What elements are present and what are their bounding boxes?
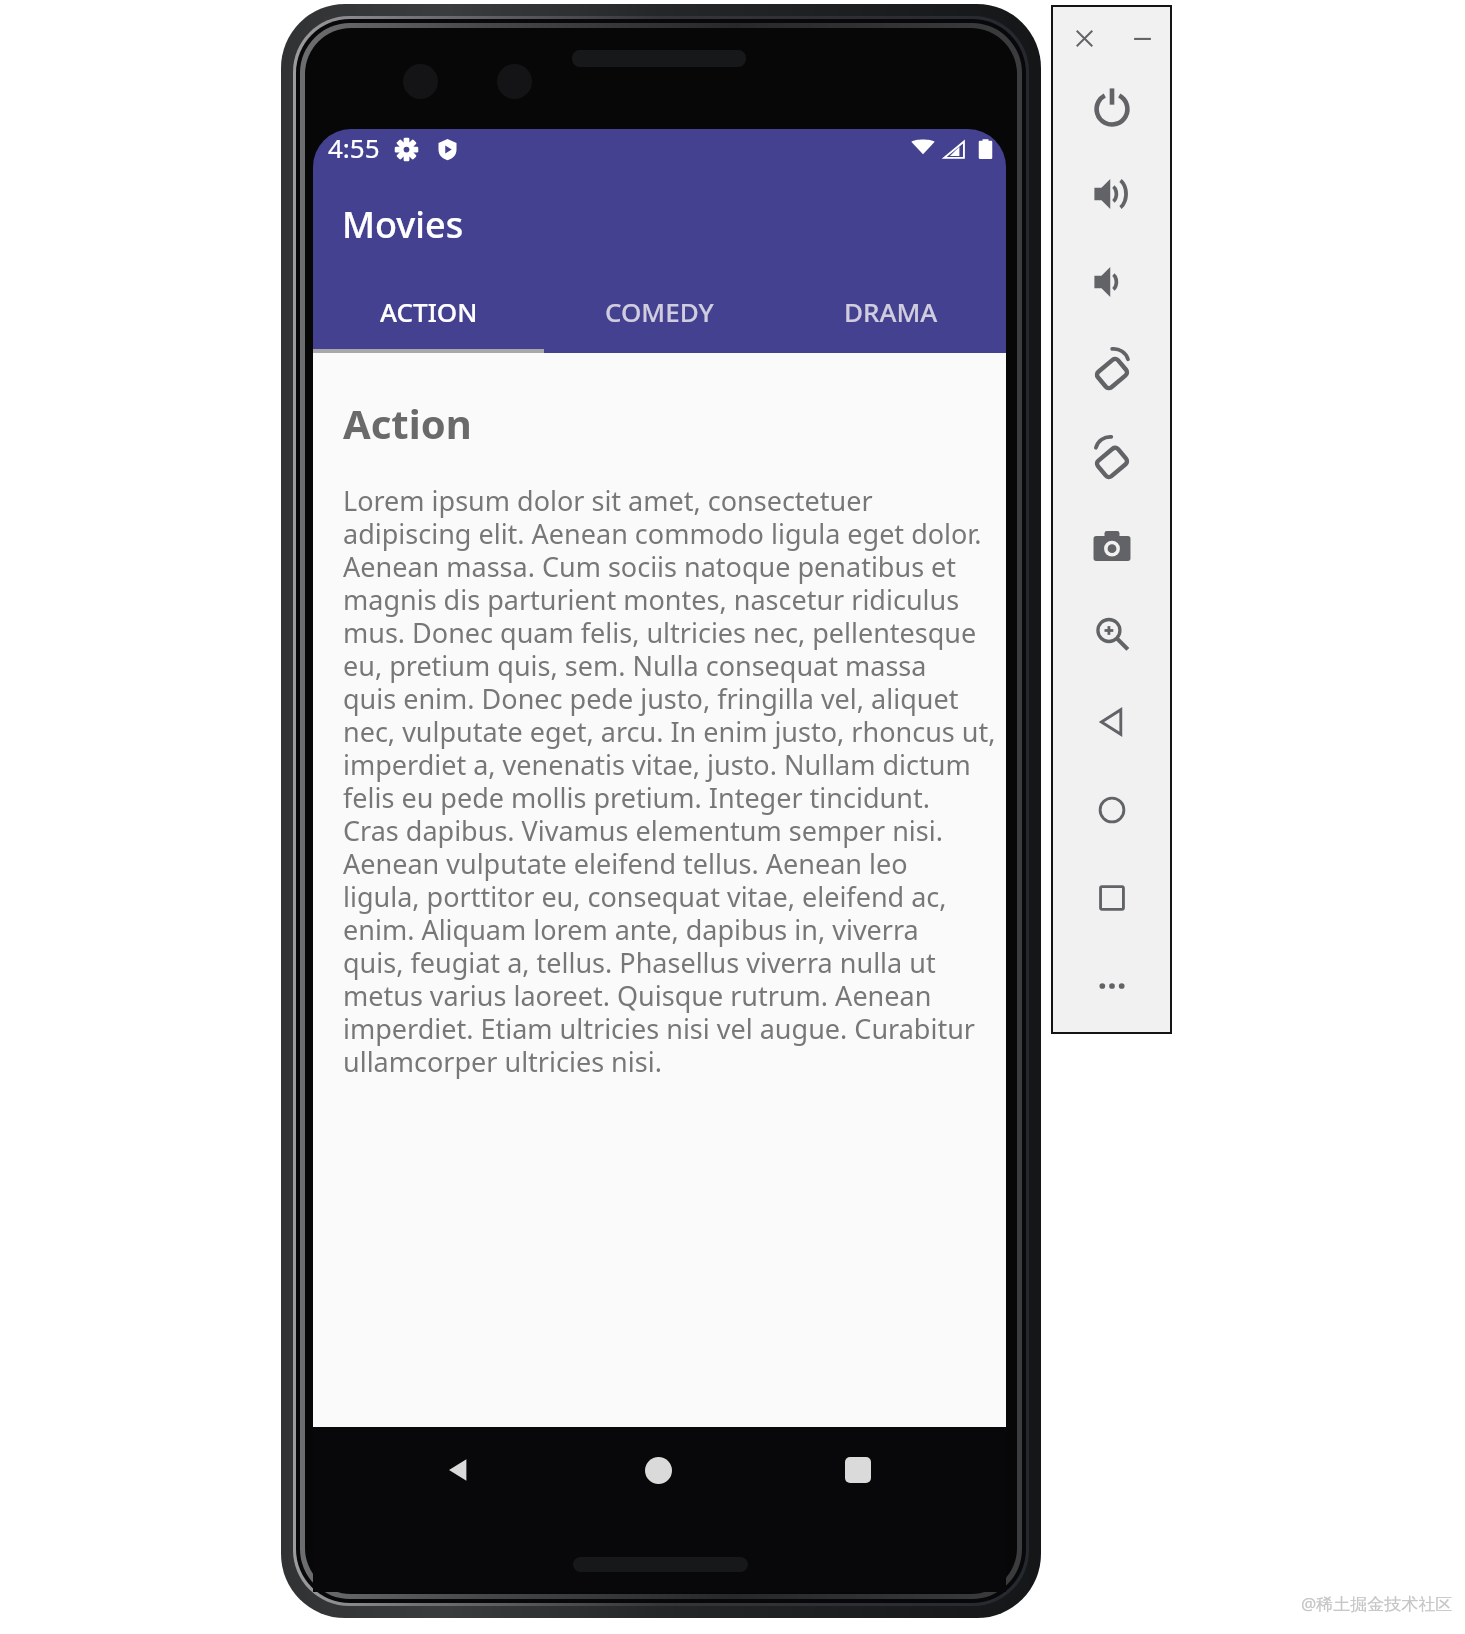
button[interactable]: Zoom in <box>1053 590 1170 678</box>
staticText: ACTION <box>380 294 478 329</box>
button[interactable]: Minimize <box>1115 7 1170 62</box>
staticText: @稀土掘金技术社区 <box>1301 1592 1453 1615</box>
button[interactable]: More <box>1053 942 1170 1030</box>
button[interactable]: Home <box>1053 766 1170 854</box>
button[interactable]: Overview <box>1053 854 1170 942</box>
button[interactable]: Back <box>428 1440 488 1500</box>
button[interactable]: Close <box>1053 7 1115 62</box>
button[interactable]: Home <box>628 1440 688 1500</box>
staticText: Action <box>343 396 472 450</box>
button[interactable]: Volume down <box>1053 238 1170 326</box>
button[interactable]: Back <box>1053 678 1170 766</box>
staticText: Lorem ipsum dolor sit amet, consectetuer… <box>343 482 996 1080</box>
button[interactable]: ACTION <box>313 275 544 353</box>
staticText: 4:55 <box>328 130 380 165</box>
staticText: COMEDY <box>605 294 714 329</box>
button[interactable]: COMEDY <box>544 275 775 353</box>
button[interactable]: Volume up <box>1053 150 1170 238</box>
button[interactable]: Power <box>1053 62 1170 150</box>
staticText: DRAMA <box>844 294 938 329</box>
button[interactable]: Recent apps <box>828 1440 888 1500</box>
button[interactable]: Rotate right <box>1053 414 1170 502</box>
button[interactable]: DRAMA <box>775 275 1006 353</box>
staticText: Movies <box>342 200 464 249</box>
button[interactable]: Rotate left <box>1053 326 1170 414</box>
button[interactable]: Take screenshot <box>1053 502 1170 590</box>
